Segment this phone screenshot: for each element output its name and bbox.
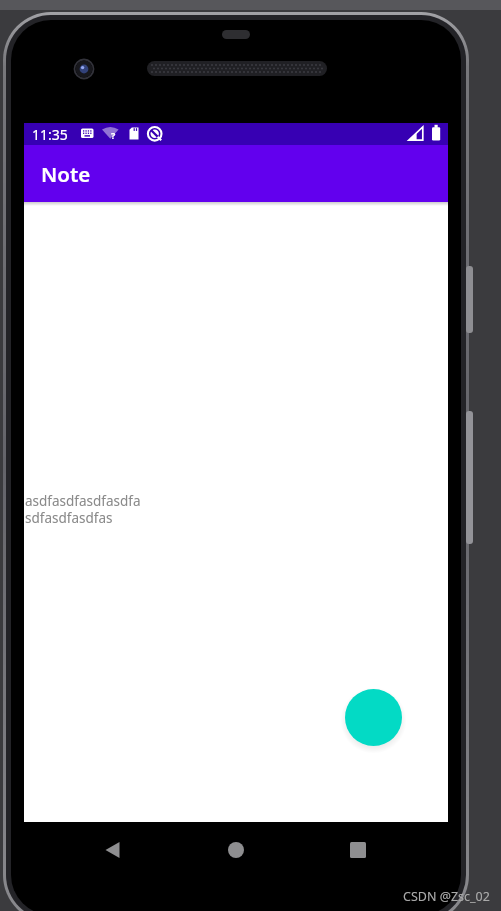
button[interactable] bbox=[212, 826, 260, 874]
button[interactable] bbox=[88, 826, 136, 874]
staticText: CSDN @Zsc_02 bbox=[403, 888, 490, 905]
staticText: Note bbox=[41, 160, 91, 188]
staticText: ? bbox=[111, 129, 116, 141]
button[interactable] bbox=[345, 689, 402, 746]
button[interactable]: asdfasdfasdfasdfa sdfasdfasdfas bbox=[24, 492, 140, 527]
staticText: 11:35 bbox=[32, 125, 68, 144]
staticText: asdfasdfasdfasdfa sdfasdfasdfas bbox=[25, 492, 141, 527]
button[interactable] bbox=[334, 826, 382, 874]
